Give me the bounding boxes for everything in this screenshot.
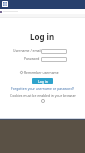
staticText: Forgotten your username or password? [11, 86, 74, 91]
button[interactable] [41, 49, 67, 54]
staticText: Username / email [13, 48, 42, 53]
button[interactable]: Log in [32, 78, 53, 84]
staticText: Password [24, 56, 40, 61]
button[interactable]: Remember username [20, 70, 59, 75]
staticText: Log in [30, 31, 55, 42]
button[interactable]: Help [41, 99, 45, 103]
button[interactable] [41, 57, 67, 62]
staticText: Cookies must be enabled in your browser [10, 93, 76, 98]
button[interactable]: Forgotten your username or password? [11, 86, 74, 91]
staticText: Remember username [24, 70, 59, 75]
staticText: Log in [38, 79, 48, 84]
button[interactable]: Apps menu [2, 1, 8, 7]
